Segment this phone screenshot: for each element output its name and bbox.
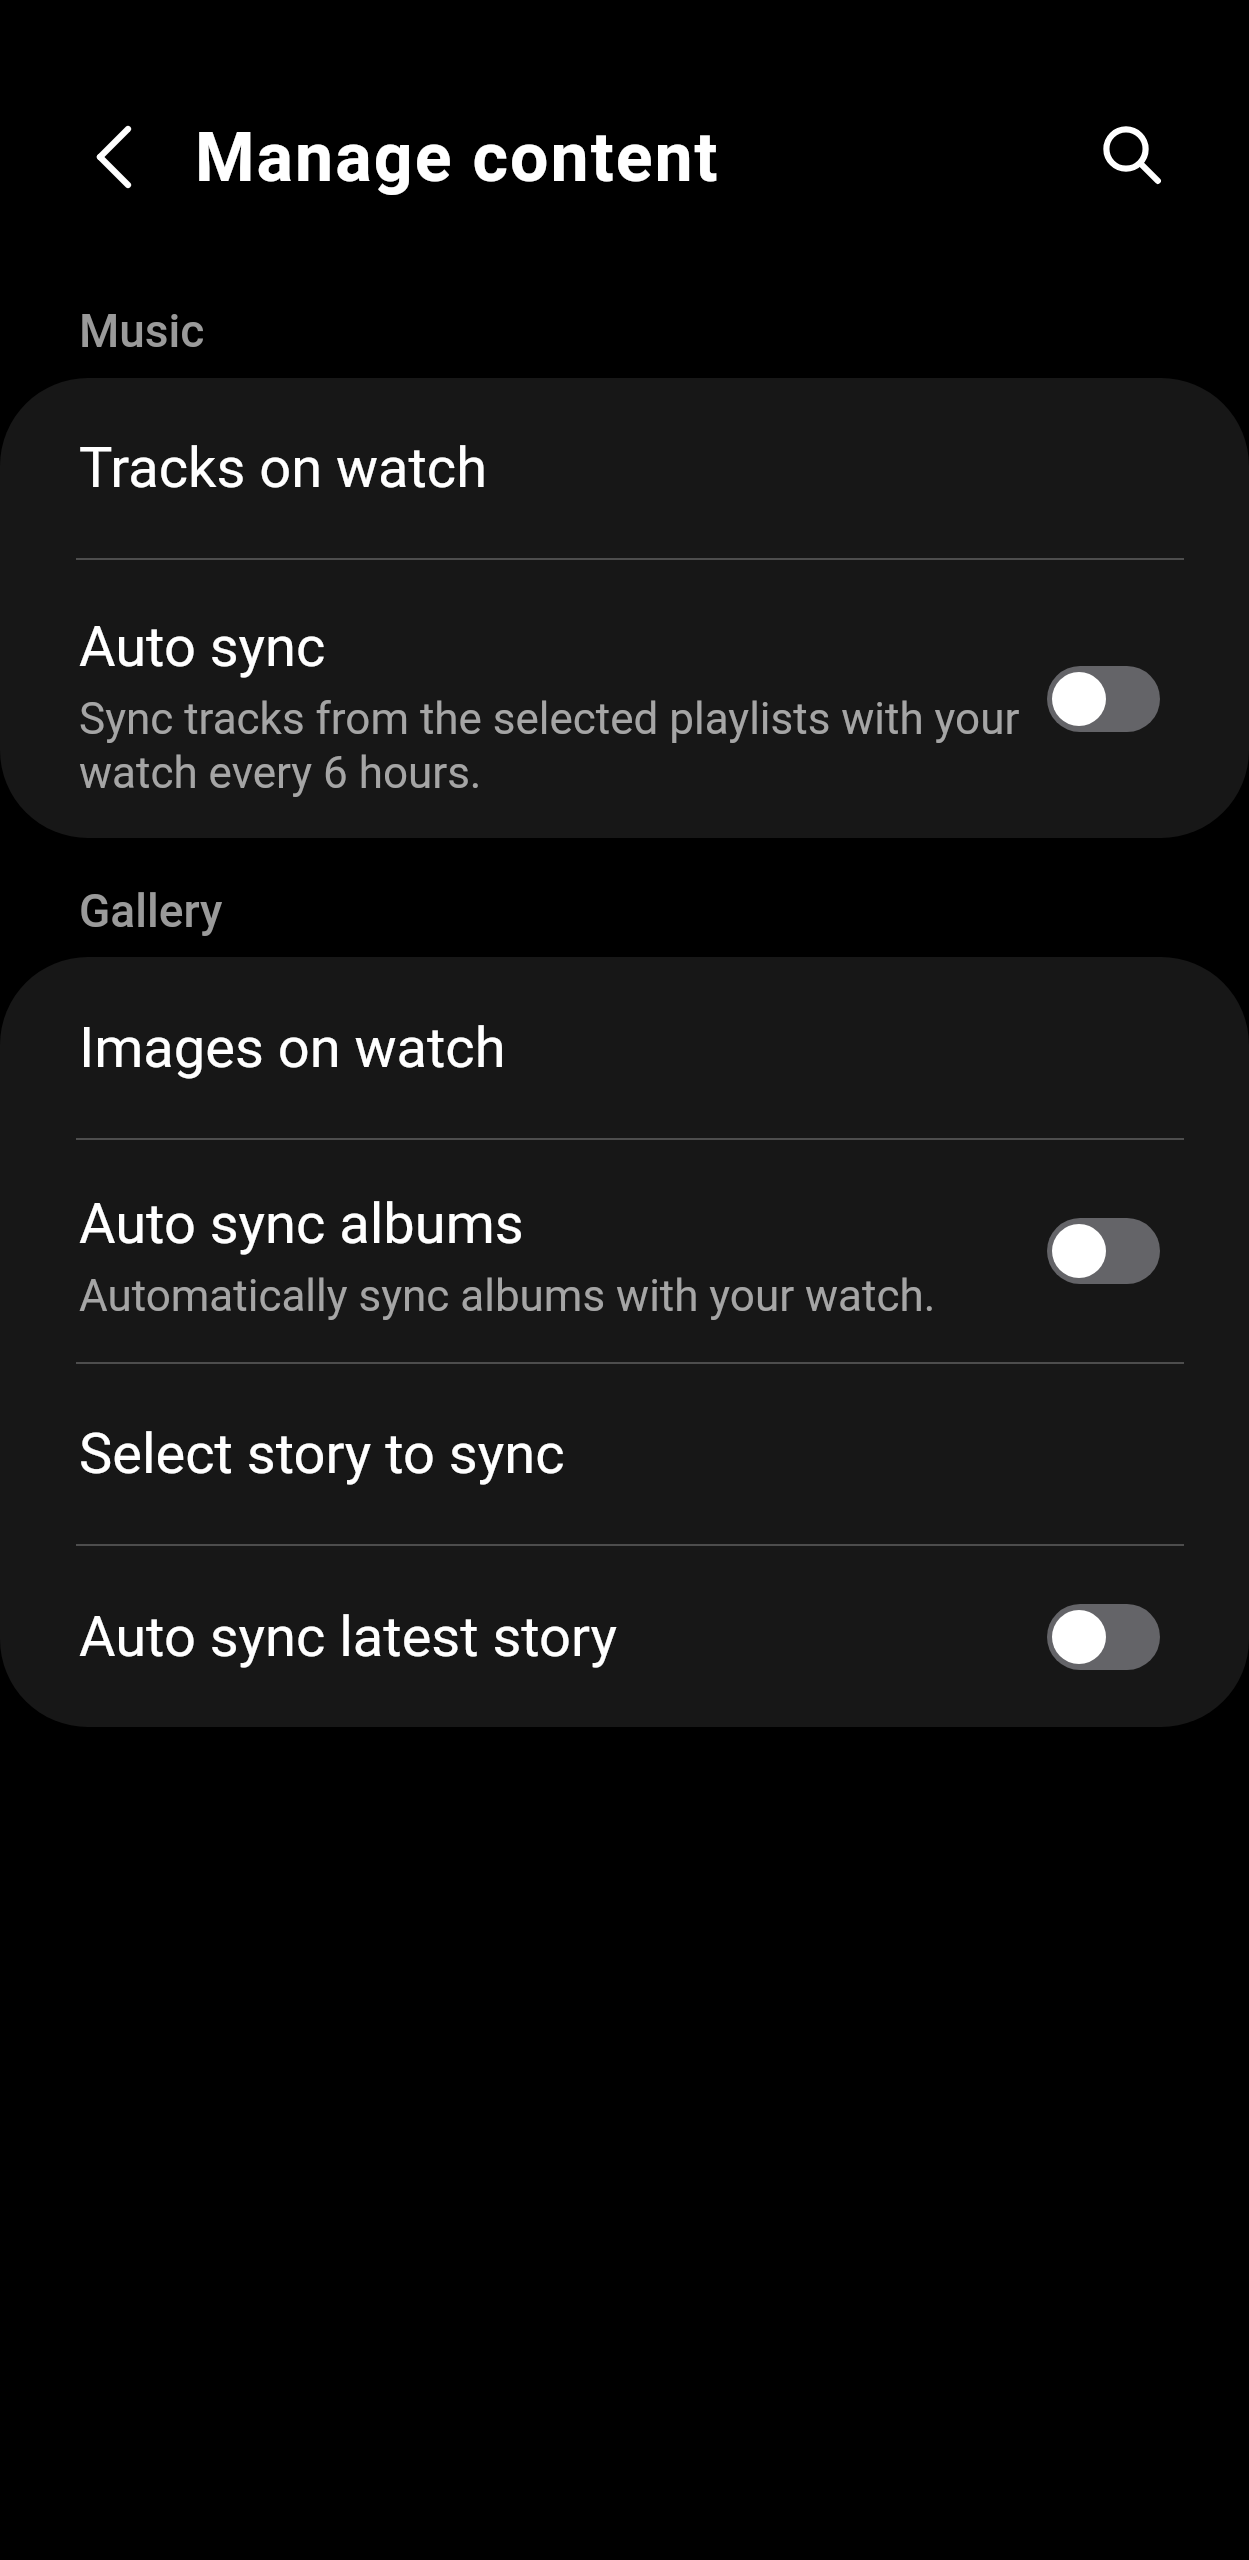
button[interactable]: Auto sync albums (0, 1140, 1249, 1362)
button[interactable]: Tracks on watch (0, 378, 1249, 558)
staticText: Images on watch (79, 1015, 506, 1081)
staticText: Sync tracks from the selected playlists … (79, 691, 1031, 799)
button[interactable]: Select story to sync (0, 1364, 1249, 1544)
button[interactable]: Search (1056, 79, 1208, 231)
staticText: Manage content (195, 118, 720, 198)
staticText: Music (79, 304, 205, 358)
button[interactable]: Navigate up (39, 81, 191, 233)
staticText: Auto sync latest story (79, 1604, 618, 1670)
staticText: Auto sync albums (79, 1191, 524, 1257)
button[interactable]: Auto sync (0, 560, 1249, 838)
staticText: Auto sync (79, 614, 326, 680)
staticText: Automatically sync albums with your watc… (79, 1268, 936, 1322)
staticText: Gallery (79, 884, 223, 938)
staticText: Select story to sync (79, 1421, 565, 1487)
button[interactable]: Auto sync latest story (0, 1546, 1249, 1727)
staticText: Tracks on watch (79, 435, 487, 501)
button[interactable]: Images on watch (0, 957, 1249, 1138)
